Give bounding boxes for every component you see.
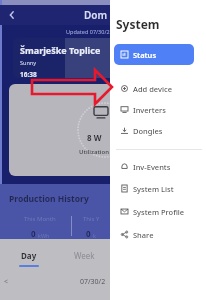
button[interactable]: Back	[4, 7, 20, 23]
staticText: Week	[74, 250, 95, 261]
staticText: 16:38	[20, 70, 37, 78]
staticText: System Profile	[133, 207, 185, 217]
staticText: System	[116, 16, 160, 32]
staticText: Sunny	[20, 59, 37, 66]
staticText: Production History	[9, 193, 89, 205]
button[interactable]: 8 W	[9, 84, 110, 176]
button[interactable]: System List	[110, 182, 206, 195]
staticText: Dongles	[133, 126, 163, 136]
button[interactable]: Add device	[110, 82, 206, 95]
button[interactable]: Inverters	[110, 103, 206, 116]
staticText: Inv-Events	[133, 162, 171, 172]
staticText: Šmarješke Toplice	[20, 44, 101, 56]
button[interactable]: Week	[58, 250, 110, 261]
staticText: This Y	[83, 215, 100, 223]
staticText: k	[93, 232, 96, 239]
staticText: Inverters	[133, 105, 166, 115]
staticText: This Month	[24, 215, 56, 223]
staticText: 0	[31, 228, 36, 239]
staticText: Dom	[84, 8, 108, 22]
staticText: 07/30/2	[80, 277, 106, 287]
button[interactable]: <	[4, 277, 9, 287]
staticText: kWh	[38, 232, 50, 239]
staticText: Day	[21, 250, 37, 261]
button[interactable]: Status	[114, 44, 194, 65]
button[interactable]: Inv-Events	[110, 160, 206, 173]
staticText: Utilization	[79, 148, 110, 156]
staticText: Share	[133, 230, 154, 240]
button[interactable]: Šmarješke Toplice	[13, 38, 110, 78]
button[interactable]: Dongles	[110, 124, 206, 137]
staticText: Updated 07/30/2	[66, 28, 110, 35]
staticText: System List	[133, 184, 174, 194]
staticText: Status	[133, 50, 157, 60]
button[interactable]: Day	[0, 250, 58, 267]
staticText: 0	[86, 228, 91, 239]
staticText: 8 W	[87, 132, 102, 143]
button[interactable]: System Profile	[110, 205, 206, 218]
button[interactable]: Share	[110, 228, 206, 241]
staticText: Add device	[133, 84, 172, 94]
